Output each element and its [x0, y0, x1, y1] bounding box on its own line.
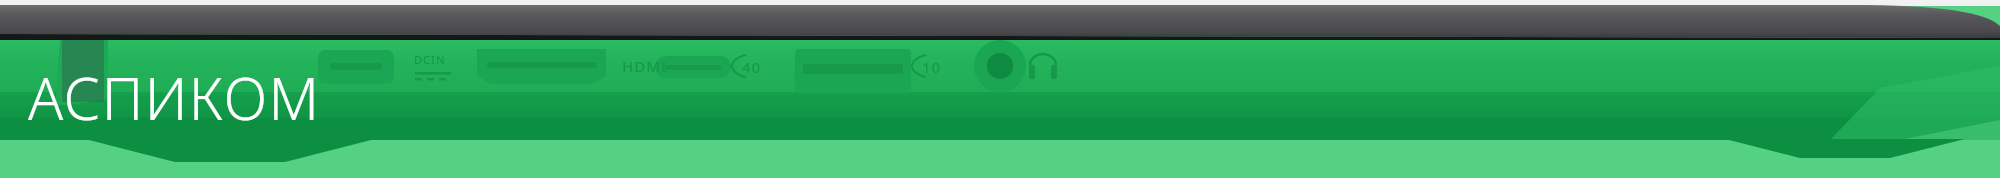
staticText: DCIN: [414, 52, 446, 67]
staticText: 40: [742, 57, 762, 77]
staticText: HDMI: [622, 56, 668, 76]
button[interactable]: ASPIKOM laptop banner: [0, 0, 2000, 178]
button[interactable]: АСПИКОМ: [28, 58, 321, 137]
staticText: АСПИКОМ: [28, 58, 321, 137]
staticText: 10: [922, 57, 942, 77]
